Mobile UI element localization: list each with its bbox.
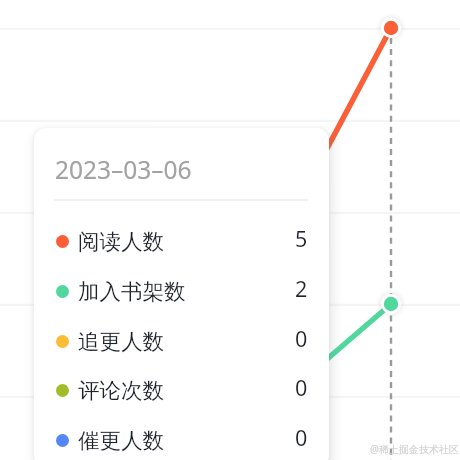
- button[interactable]: 追更人数: [34, 316, 329, 366]
- staticText: 2023–03–06: [55, 153, 192, 186]
- staticText: 评论次数: [78, 377, 164, 404]
- button[interactable]: 加入书架数 data point: [379, 292, 403, 316]
- staticText: 催更人数: [78, 427, 164, 454]
- button[interactable]: 加入书架数: [34, 266, 329, 316]
- button[interactable]: 阅读人数: [34, 216, 329, 266]
- staticText: 0: [295, 324, 308, 353]
- button[interactable]: 催更人数: [34, 415, 329, 460]
- staticText: 2: [295, 274, 308, 303]
- button[interactable]: 评论次数: [34, 365, 329, 415]
- staticText: 5: [295, 224, 308, 253]
- staticText: 0: [295, 373, 308, 402]
- staticText: 0: [295, 423, 308, 452]
- button[interactable]: 阅读人数 data point: [379, 16, 403, 40]
- staticText: 阅读人数: [78, 228, 164, 255]
- staticText: 追更人数: [78, 328, 164, 355]
- staticText: 加入书架数: [78, 278, 186, 305]
- staticText: @稀土掘金技术社区: [370, 442, 459, 456]
